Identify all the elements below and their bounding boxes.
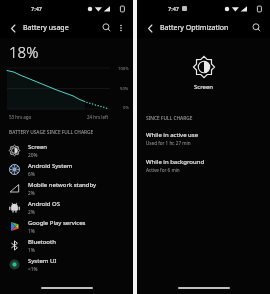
staticText: 2% — [28, 209, 35, 216]
button[interactable]: Google Play services — [0, 217, 133, 236]
staticText: Active for 6 min — [146, 167, 180, 173]
button[interactable]: Back — [6, 21, 20, 35]
staticText: Used for 1 hr, 27 min — [146, 140, 191, 146]
button[interactable]: Screen — [0, 141, 133, 160]
staticText: 0% — [123, 105, 129, 111]
button[interactable]: Android System — [0, 160, 133, 179]
button[interactable]: More options — [114, 21, 127, 34]
staticText: Battery Optimization — [160, 23, 229, 33]
staticText: While in active use — [146, 131, 199, 139]
staticText: BATTERY USAGE SINCE FULL CHARGE — [9, 129, 94, 136]
staticText: Battery usage — [23, 23, 69, 33]
staticText: Android OS — [28, 200, 60, 208]
staticText: Screen — [28, 143, 48, 151]
staticText: Bluetooth — [28, 238, 56, 246]
button[interactable]: Mobile network standby — [0, 179, 133, 198]
button[interactable]: While in active use — [137, 130, 270, 147]
button[interactable]: Back — [143, 21, 157, 35]
staticText: 7:47 — [31, 5, 42, 12]
button[interactable]: While in background — [137, 157, 270, 174]
staticText: 24 hrs left — [87, 114, 109, 120]
staticText: SINCE FULL CHARGE — [146, 115, 193, 122]
staticText: Android System — [28, 162, 73, 170]
staticText: 7:47 — [168, 5, 179, 12]
button[interactable]: Bluetooth — [0, 236, 133, 255]
staticText: 53 hrs ago — [9, 114, 32, 120]
button[interactable]: Search — [249, 20, 264, 35]
staticText: Mobile network standby — [28, 181, 97, 189]
button[interactable]: Search — [99, 20, 114, 35]
button[interactable]: Android OS — [0, 198, 133, 217]
staticText: 2% — [28, 190, 35, 197]
staticText: 6% — [28, 171, 35, 178]
staticText: 1% — [28, 247, 35, 254]
staticText: 50% — [120, 86, 129, 92]
button[interactable]: System UI — [0, 255, 133, 274]
staticText: While in background — [146, 158, 205, 166]
staticText: 100% — [118, 66, 129, 72]
staticText: Screen — [194, 83, 214, 91]
staticText: 20% — [28, 152, 38, 159]
staticText: Google Play services — [28, 219, 86, 227]
staticText: <1% — [28, 266, 38, 273]
staticText: 1% — [28, 228, 35, 235]
staticText: System UI — [28, 257, 57, 265]
staticText: 18% — [9, 42, 39, 62]
